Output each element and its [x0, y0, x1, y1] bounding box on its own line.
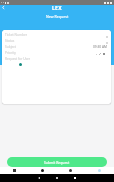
button[interactable]: Pick date — [104, 34, 109, 39]
staticText: Ticket Number — [5, 33, 28, 37]
button[interactable]: Submit Request — [7, 157, 107, 167]
button[interactable]: Home — [0, 167, 28, 174]
button[interactable]: Attach — [94, 52, 98, 56]
button[interactable]: Back — [36, 175, 42, 181]
staticText: New Request — [46, 14, 69, 19]
staticText: Status — [5, 39, 15, 43]
button[interactable]: Upload — [102, 52, 106, 56]
button[interactable]: Home — [54, 175, 60, 181]
button[interactable]: Recents — [72, 175, 78, 181]
staticText: Subject — [5, 45, 16, 49]
staticText: LEX — [52, 5, 62, 12]
button[interactable]: Profile — [85, 167, 114, 174]
staticText: Priority — [5, 51, 16, 55]
staticText: 09:30 AM — [93, 45, 107, 49]
button[interactable]: Approvals — [56, 167, 85, 174]
staticText: Request for User — [5, 57, 31, 61]
button[interactable]: Edit — [98, 52, 102, 56]
button[interactable]: Requests — [28, 167, 56, 174]
staticText: Submit Request — [44, 160, 70, 165]
button[interactable]: Pick time — [104, 40, 109, 45]
button[interactable]: Back — [0, 4, 7, 11]
